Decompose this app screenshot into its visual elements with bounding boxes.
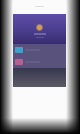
button[interactable] bbox=[13, 44, 66, 56]
button[interactable] bbox=[13, 56, 66, 68]
